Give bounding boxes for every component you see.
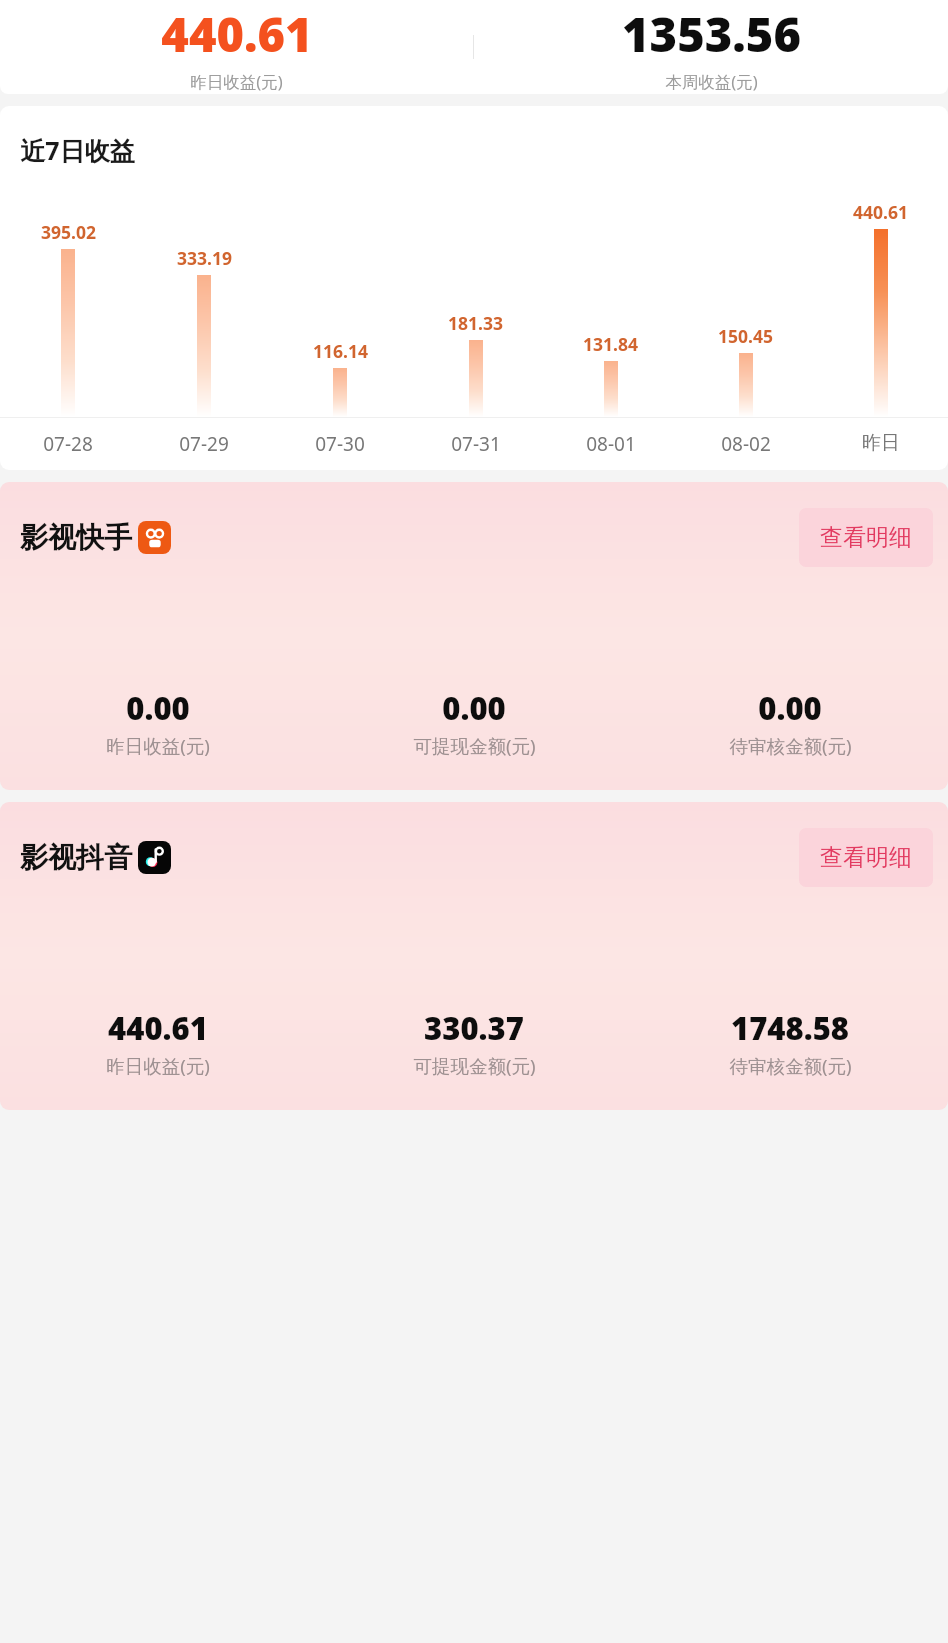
staticText: 116.14 xyxy=(313,339,368,363)
staticText: 昨日收益(元) xyxy=(106,733,210,758)
staticText: 待审核金额(元) xyxy=(729,733,852,758)
staticText: 440.61 xyxy=(108,1007,208,1049)
button[interactable]: 1353.56 xyxy=(474,2,948,93)
other: 快手 xyxy=(138,521,171,554)
staticText: 395.02 xyxy=(41,220,96,244)
staticText: 昨日收益(元) xyxy=(106,1053,210,1078)
staticText: 0.00 xyxy=(442,687,506,729)
staticText: 07-29 xyxy=(179,431,229,457)
button[interactable]: 影视快手 xyxy=(0,482,948,790)
staticText: 可提现金额(元) xyxy=(413,1053,536,1078)
staticText: 131.84 xyxy=(583,332,638,356)
staticText: 影视快手 xyxy=(20,520,132,555)
staticText: 昨日收益(元) xyxy=(190,70,283,93)
staticText: 查看明细 xyxy=(820,523,912,552)
staticText: 查看明细 xyxy=(820,843,912,872)
staticText: 440.61 xyxy=(853,200,908,224)
staticText: 影视抖音 xyxy=(20,840,132,875)
staticText: 181.33 xyxy=(448,311,503,335)
staticText: 333.19 xyxy=(177,246,232,270)
staticText: 07-31 xyxy=(451,431,501,457)
staticText: 待审核金额(元) xyxy=(729,1053,852,1078)
staticText: 07-30 xyxy=(315,431,365,457)
staticText: 可提现金额(元) xyxy=(413,733,536,758)
staticText: 150.45 xyxy=(718,324,773,348)
button[interactable]: 440.61 xyxy=(0,2,473,93)
staticText: 1748.58 xyxy=(731,1007,849,1049)
button[interactable]: 查看明细 xyxy=(799,508,933,567)
staticText: 1353.56 xyxy=(622,2,801,66)
staticText: 07-28 xyxy=(43,431,93,457)
staticText: 08-02 xyxy=(721,431,771,457)
staticText: 近7日收益 xyxy=(20,133,135,167)
staticText: 昨日 xyxy=(862,431,900,455)
staticText: 08-01 xyxy=(586,431,636,457)
other: 抖音 xyxy=(138,841,171,874)
staticText: 本周收益(元) xyxy=(665,70,758,93)
button[interactable]: 查看明细 xyxy=(799,828,933,887)
staticText: 0.00 xyxy=(758,687,822,729)
staticText: 330.37 xyxy=(424,1007,524,1049)
staticText: 0.00 xyxy=(126,687,190,729)
button[interactable]: 影视抖音 xyxy=(0,802,948,1110)
staticText: 440.61 xyxy=(161,2,313,66)
